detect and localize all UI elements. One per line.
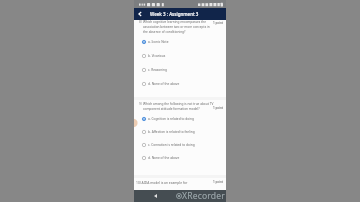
staticText: c. Reasoning: [148, 68, 167, 72]
button[interactable]: d. None of the above: [142, 77, 226, 91]
staticText: a. Iconic Note: [148, 40, 169, 44]
staticText: d. None of the above: [148, 156, 180, 160]
staticText: 1 point: [213, 21, 224, 25]
staticText: a. Cognition is related to doing: [148, 117, 194, 121]
button[interactable]: Back: [134, 8, 146, 20]
staticText: b. Vicarious: [148, 54, 166, 58]
staticText: Week 3 : Assignment 3: [150, 11, 199, 17]
button[interactable]: b. Affection is related to feeling: [142, 125, 226, 138]
staticText: 10) AIDA model is an example for: [136, 180, 213, 184]
staticText: 9): [139, 102, 142, 106]
button[interactable]: c. Connation is related to doing: [142, 138, 226, 151]
button[interactable]: a. Iconic Note: [142, 35, 226, 49]
button[interactable]: b. Vicarious: [142, 49, 226, 63]
staticText: d. None of the above: [148, 82, 180, 86]
staticText: c. Connation is related to doing: [148, 143, 195, 147]
staticText: Which cognitive learning encompasses the…: [143, 20, 214, 34]
button[interactable]: a. Cognition is related to doing: [142, 112, 226, 125]
staticText: 8): [139, 20, 142, 24]
staticText: Which among the following is not true ab…: [143, 102, 214, 111]
button[interactable]: d. None of the above: [142, 151, 226, 164]
button[interactable]: Back: [149, 190, 161, 202]
staticText: 1 point: [213, 106, 224, 110]
staticText: b. Affection is related to feeling: [148, 130, 195, 134]
staticText: 1 point: [213, 180, 224, 184]
staticText: XRecorder: [182, 190, 225, 202]
button[interactable]: c. Reasoning: [142, 63, 226, 77]
